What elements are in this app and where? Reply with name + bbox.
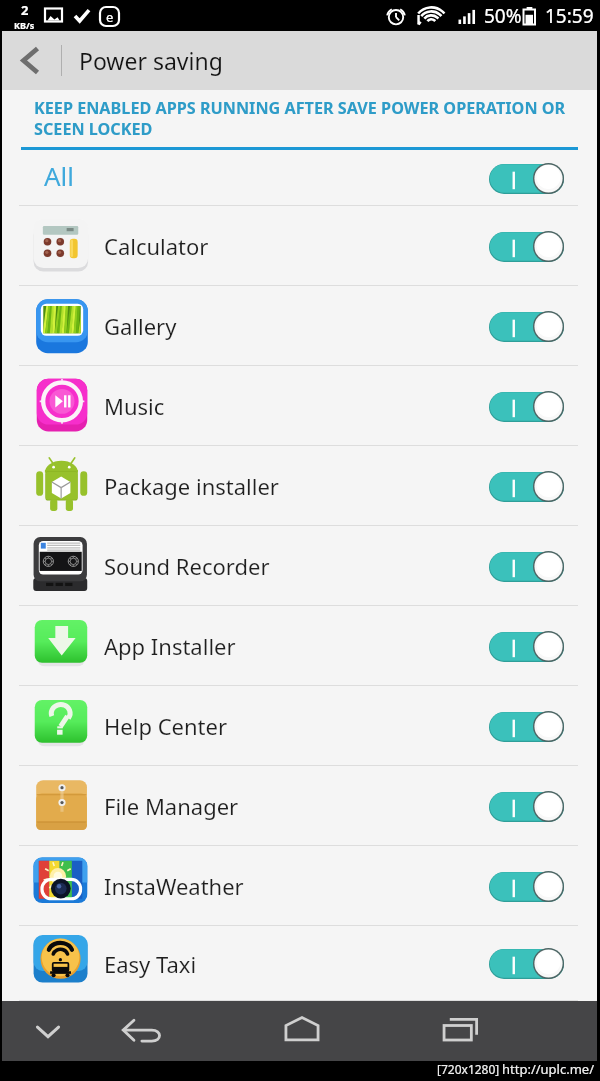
button[interactable]: Recents xyxy=(431,1001,491,1061)
button[interactable]: Home xyxy=(272,1001,332,1061)
staticText: KEEP ENABLED APPS RUNNING AFTER SAVE POW… xyxy=(34,97,572,139)
button[interactable]: Calculator xyxy=(0,206,600,286)
button[interactable]: Toggle on xyxy=(489,311,564,342)
button[interactable]: Toggle on xyxy=(489,871,564,902)
button[interactable]: Music xyxy=(0,366,600,446)
staticText: Power saving xyxy=(79,45,223,76)
button[interactable]: Toggle on xyxy=(489,631,564,662)
staticText: Calculator xyxy=(104,231,209,261)
button[interactable]: Gallery xyxy=(0,286,600,366)
button[interactable]: Back xyxy=(0,31,61,90)
staticText: InstaWeather xyxy=(104,871,244,901)
button[interactable]: Toggle on xyxy=(489,551,564,582)
staticText: Gallery xyxy=(104,311,177,341)
staticText: Help Center xyxy=(104,711,227,741)
button[interactable]: Toggle on xyxy=(489,471,564,502)
button[interactable]: Back xyxy=(111,1001,171,1061)
button[interactable]: Toggle on xyxy=(489,791,564,822)
button[interactable]: Toggle on xyxy=(489,948,564,979)
staticText: App Installer xyxy=(104,631,236,661)
button[interactable]: File Manager xyxy=(0,766,600,846)
button[interactable]: Easy Taxi xyxy=(0,926,600,1001)
staticText: KB/s xyxy=(14,19,35,31)
button[interactable]: All xyxy=(0,150,600,206)
button[interactable]: Sound Recorder xyxy=(0,526,600,606)
staticText: Package installer xyxy=(104,471,279,501)
staticText: [720x1280] xyxy=(437,1061,500,1077)
staticText: http://uplc.me/ xyxy=(502,1060,595,1078)
staticText: Easy Taxi xyxy=(104,949,197,979)
button[interactable]: Hide keyboard xyxy=(18,1001,78,1061)
button[interactable]: Toggle on xyxy=(489,163,564,194)
staticText: File Manager xyxy=(104,791,239,821)
staticText: Sound Recorder xyxy=(104,551,270,581)
button[interactable]: Package installer xyxy=(0,446,600,526)
staticText: All xyxy=(44,158,75,193)
button[interactable]: Toggle on xyxy=(489,391,564,422)
staticText: 2 xyxy=(21,1,29,19)
button[interactable]: Toggle on xyxy=(489,231,564,262)
staticText: e xyxy=(106,8,114,26)
staticText: 15:59 xyxy=(545,3,594,29)
staticText: Music xyxy=(104,391,165,421)
button[interactable]: Toggle on xyxy=(489,711,564,742)
button[interactable]: Help Center xyxy=(0,686,600,766)
staticText: 50% xyxy=(484,3,522,29)
button[interactable]: App Installer xyxy=(0,606,600,686)
button[interactable]: InstaWeather xyxy=(0,846,600,926)
